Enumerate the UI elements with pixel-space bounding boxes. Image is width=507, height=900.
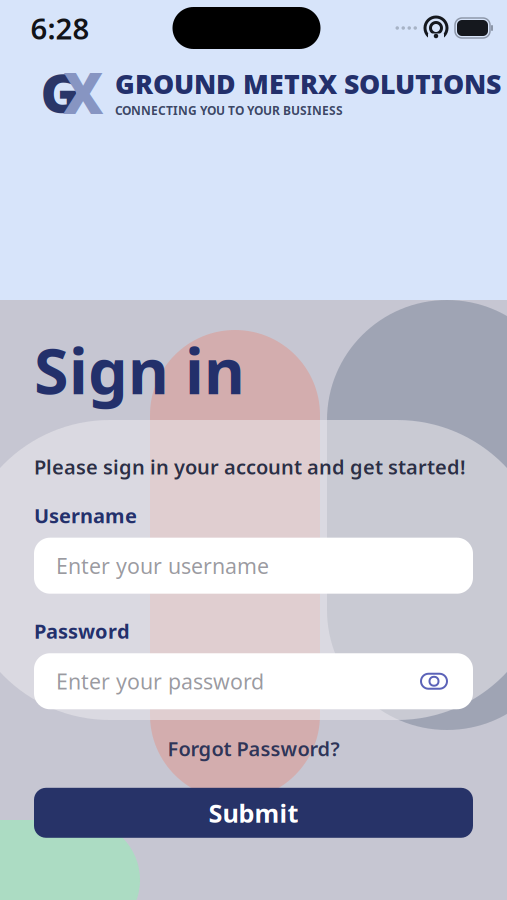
button[interactable]: Show password <box>417 653 451 709</box>
button[interactable]: Forgot Password? <box>161 731 345 766</box>
staticText: Forgot Password? <box>167 735 339 762</box>
staticText: CONNECTING YOU TO YOUR BUSINESS <box>115 102 343 118</box>
staticText: Please sign in your account and get star… <box>34 454 466 480</box>
staticText: Sign in <box>34 328 245 411</box>
staticText: Enter your password <box>56 667 264 695</box>
staticText: 6:28 <box>30 8 89 47</box>
staticText: Submit <box>208 796 298 830</box>
button[interactable]: Enter your password <box>56 653 417 709</box>
staticText: Username <box>34 502 137 529</box>
staticText: X <box>63 55 103 129</box>
staticText: Password <box>34 618 130 644</box>
button[interactable]: Enter your username <box>34 538 473 594</box>
staticText: G <box>40 57 79 128</box>
staticText: GROUND METRX SOLUTIONS <box>115 66 501 101</box>
staticText: Enter your username <box>56 551 269 580</box>
button[interactable]: Submit <box>34 788 473 838</box>
